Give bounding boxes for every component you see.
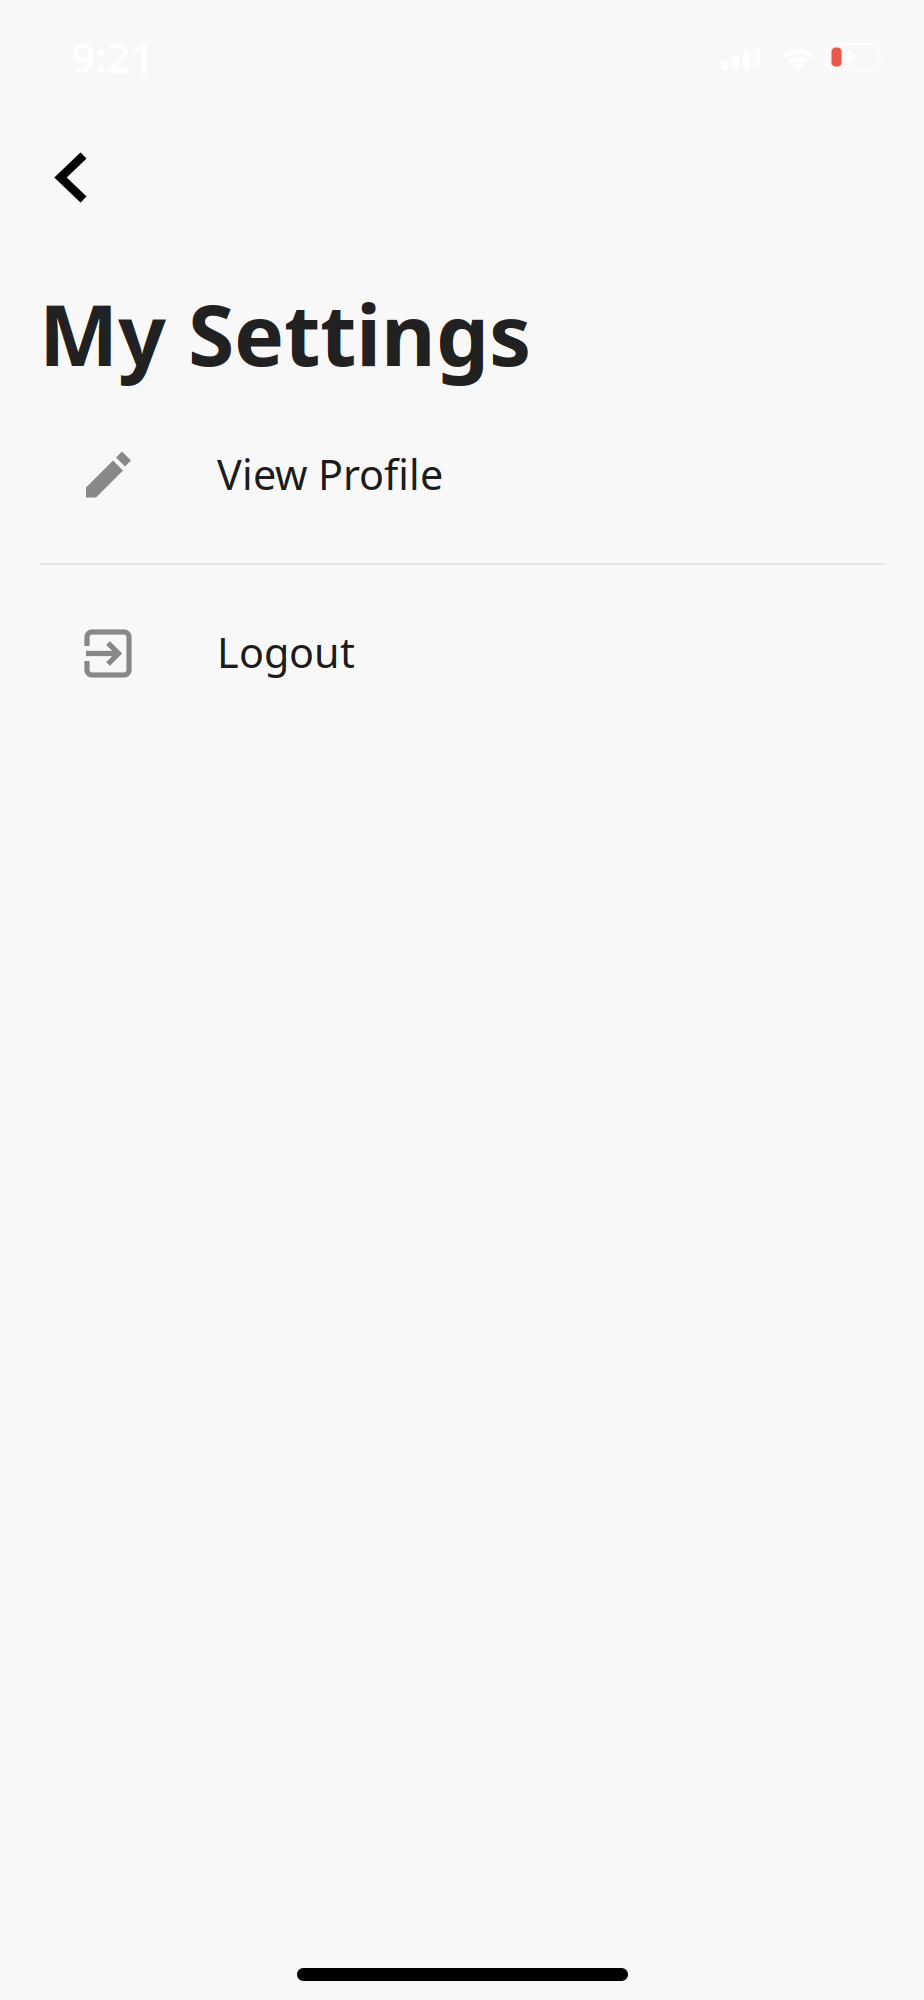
- staticText: Logout: [217, 625, 355, 679]
- staticText: My Settings: [39, 278, 531, 389]
- staticText: View Profile: [217, 447, 443, 501]
- button[interactable]: Back: [24, 129, 120, 225]
- button[interactable]: View Profile: [0, 388, 924, 563]
- button[interactable]: Logout: [0, 565, 924, 741]
